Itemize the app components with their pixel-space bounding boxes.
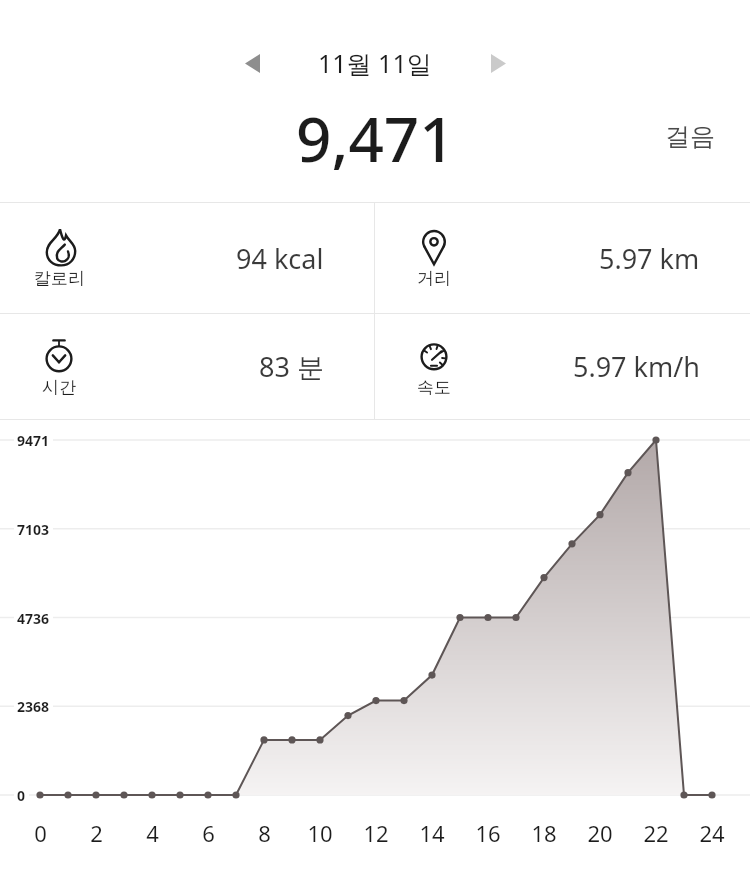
staticText: 18 xyxy=(531,818,557,848)
staticText: 4736 xyxy=(17,609,50,628)
button[interactable]: 속도 xyxy=(375,314,750,419)
staticText: 24 xyxy=(699,818,725,848)
staticText: 칼로리 xyxy=(34,268,85,289)
staticText: 5.97 km xyxy=(599,240,700,277)
button[interactable]: Next day xyxy=(478,43,518,83)
staticText: 걸음 xyxy=(665,121,715,152)
button[interactable]: Previous day xyxy=(232,43,272,83)
staticText: 8 xyxy=(258,818,271,848)
button[interactable]: 시간 xyxy=(0,314,374,419)
staticText: 거리 xyxy=(417,268,451,289)
staticText: 4 xyxy=(146,818,159,848)
staticText: 16 xyxy=(475,818,501,848)
button[interactable]: 거리 xyxy=(375,203,750,313)
staticText: 2368 xyxy=(17,697,50,716)
staticText: 9,471 xyxy=(296,96,455,176)
button[interactable]: 칼로리 xyxy=(0,203,374,313)
staticText: 속도 xyxy=(417,377,451,398)
staticText: 5.97 km/h xyxy=(573,348,700,385)
staticText: 9471 xyxy=(17,431,50,450)
staticText: 12 xyxy=(363,818,389,848)
staticText: 94 kcal xyxy=(236,240,324,277)
staticText: 14 xyxy=(419,818,445,848)
staticText: 83 분 xyxy=(259,348,324,385)
staticText: 22 xyxy=(643,818,669,848)
staticText: 0 xyxy=(17,786,26,805)
staticText: 11월 11일 xyxy=(318,46,432,80)
staticText: 시간 xyxy=(42,377,76,398)
staticText: 20 xyxy=(587,818,613,848)
staticText: 6 xyxy=(202,818,215,848)
staticText: 10 xyxy=(307,818,333,848)
staticText: 0 xyxy=(34,818,47,848)
staticText: 7103 xyxy=(17,520,50,539)
staticText: 2 xyxy=(90,818,103,848)
